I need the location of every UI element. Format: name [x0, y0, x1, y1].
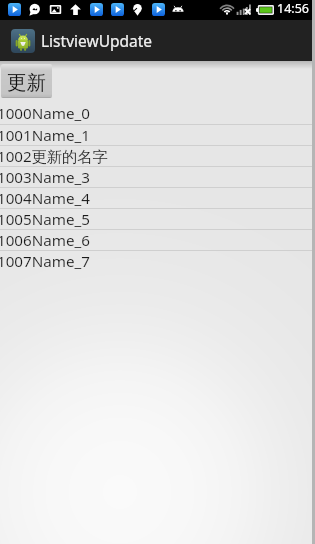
button[interactable]: 1003Name_3 [0, 167, 312, 187]
staticText: 1001Name_1 [0, 125, 91, 145]
staticText: 14:56 [277, 0, 309, 17]
staticText: 1002更新的名字 [0, 146, 108, 166]
button[interactable]: 1001Name_1 [0, 125, 312, 145]
staticText: 1000Name_0 [0, 103, 91, 124]
button[interactable]: 1007Name_7 [0, 251, 312, 271]
button[interactable]: 1006Name_6 [0, 230, 312, 250]
button[interactable]: 1005Name_5 [0, 209, 312, 229]
staticText: 1004Name_4 [0, 188, 91, 208]
button[interactable]: 1004Name_4 [0, 188, 312, 208]
button[interactable]: 更新 [1, 64, 52, 98]
staticText: 更新 [7, 70, 46, 95]
staticText: 1005Name_5 [0, 209, 91, 229]
button[interactable]: 1002更新的名字 [0, 146, 312, 166]
staticText: 1003Name_3 [0, 167, 91, 187]
staticText: 1007Name_7 [0, 251, 91, 271]
staticText: 1006Name_6 [0, 230, 91, 250]
staticText: ListviewUpdate [41, 30, 153, 51]
button[interactable]: 1000Name_0 [0, 103, 312, 124]
